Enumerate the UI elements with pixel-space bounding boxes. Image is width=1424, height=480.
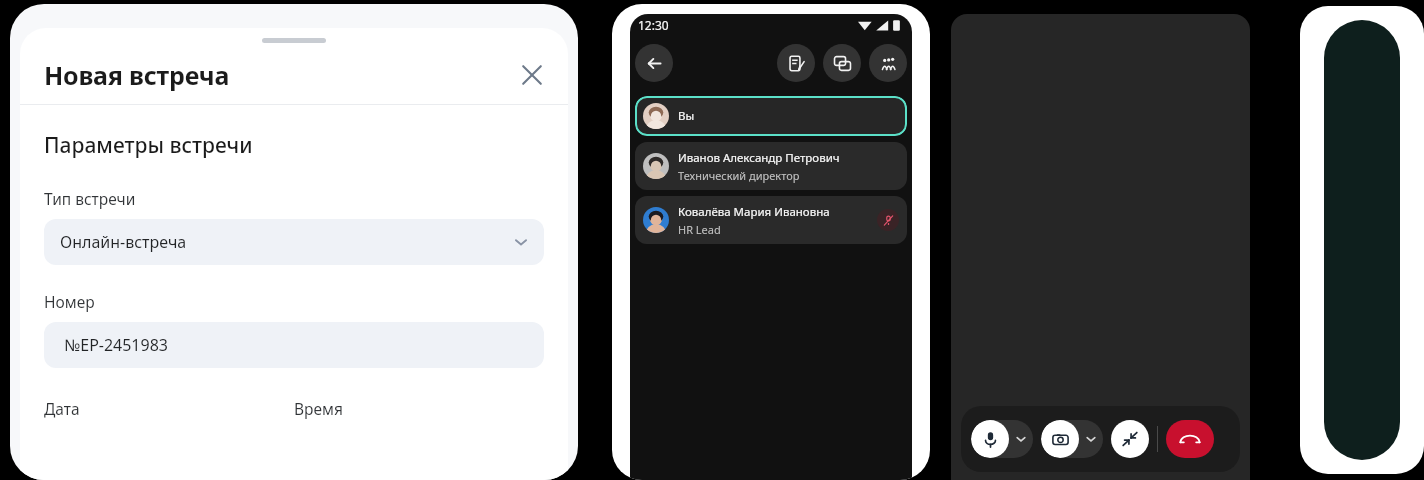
button[interactable]: Завершить звонок: [1166, 420, 1214, 458]
staticText: HR Lead: [678, 222, 721, 237]
staticText: Время: [294, 398, 343, 419]
staticText: Новая встреча: [44, 58, 230, 92]
button[interactable]: Свернуть: [1111, 420, 1149, 458]
button[interactable]: Заметки: [777, 44, 815, 82]
button[interactable]: Онлайн-встреча: [44, 219, 544, 265]
button[interactable]: №ЕР-2451983: [44, 322, 544, 368]
staticText: Ковалёва Мария Ивановна: [678, 204, 830, 220]
button[interactable]: Назад: [635, 44, 673, 82]
button[interactable]: Камера: настройки: [1079, 420, 1103, 458]
button[interactable]: Закрыть: [510, 53, 554, 97]
button[interactable]: Микрофон: настройки: [1009, 420, 1033, 458]
staticText: Технический директор: [678, 168, 800, 183]
button[interactable]: Участники: [869, 44, 907, 82]
staticText: №ЕР-2451983: [64, 334, 168, 356]
staticText: Онлайн-встреча: [60, 231, 187, 253]
button[interactable]: Ковалёва Мария Ивановна: [635, 196, 907, 244]
staticText: Параметры встречи: [44, 131, 253, 160]
staticText: Номер: [44, 291, 95, 312]
staticText: Тип встречи: [44, 188, 136, 209]
staticText: Дата: [44, 398, 80, 419]
staticText: Иванов Александр Петрович: [678, 150, 840, 166]
button[interactable]: Вы: [635, 96, 907, 136]
button[interactable]: Камера: [1041, 420, 1079, 458]
button[interactable]: Чат: [823, 44, 861, 82]
staticText: 12:30: [638, 17, 669, 33]
other: Микрофон выключен: [877, 209, 899, 231]
button[interactable]: Иванов Александр Петрович: [635, 142, 907, 190]
staticText: Вы: [678, 108, 695, 124]
button[interactable]: Микрофон: [971, 420, 1009, 458]
